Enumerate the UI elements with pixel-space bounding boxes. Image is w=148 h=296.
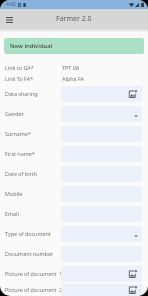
button[interactable]: Mobile	[0, 184, 148, 204]
staticText: Picture of document 2	[5, 286, 61, 293]
button[interactable]: Gender	[0, 104, 148, 124]
button[interactable]: Link to GA*	[0, 62, 148, 73]
staticText: Picture of document 1	[5, 270, 61, 277]
staticText: Mobile	[5, 190, 23, 197]
button[interactable]: Open navigation menu	[3, 13, 16, 26]
staticText: Link to GA*	[5, 64, 34, 71]
staticText: Link To FA*	[5, 75, 34, 82]
staticText: Document number	[5, 250, 54, 257]
button[interactable]: Picture of document 1	[0, 264, 148, 284]
staticText: 4:42	[6, 1, 16, 8]
staticText: TPT 0A	[62, 64, 80, 71]
button[interactable]: Data sharing	[0, 84, 148, 104]
button[interactable]: Surname*	[0, 124, 148, 144]
staticText: Gender	[5, 110, 24, 117]
staticText: First name*	[5, 150, 35, 157]
button[interactable]: New individual	[4, 38, 144, 54]
staticText: New individual	[10, 42, 53, 50]
button[interactable]: Document number	[0, 244, 148, 264]
staticText: Date of birth	[5, 170, 38, 177]
button[interactable]: Link To FA*	[0, 73, 148, 84]
button[interactable]: Date of birth	[0, 164, 148, 184]
staticText: Data sharing	[5, 90, 38, 97]
button[interactable]: Type of document	[0, 224, 148, 244]
staticText: Type of document	[5, 230, 51, 237]
button[interactable]: First name*	[0, 144, 148, 164]
staticText: Farmer 2.0	[56, 14, 92, 24]
staticText: Alpha FA	[62, 75, 85, 82]
staticText: Surname*	[5, 130, 31, 137]
staticText: Email	[5, 210, 19, 217]
button[interactable]: Email	[0, 204, 148, 224]
button[interactable]: Picture of document 2	[0, 284, 148, 296]
